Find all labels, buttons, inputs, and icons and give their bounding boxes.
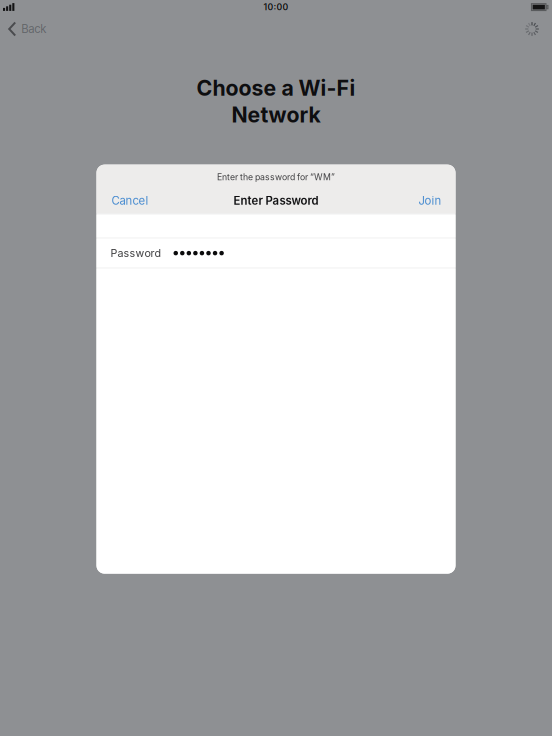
staticText: Join	[418, 194, 441, 207]
staticText: Network	[231, 102, 320, 128]
staticText: 10:00	[263, 2, 288, 12]
button[interactable]: Searching for networks	[522, 19, 542, 39]
staticText: Cancel	[111, 194, 148, 207]
staticText: Choose a Wi-Fi	[196, 75, 355, 101]
staticText: Password	[110, 247, 161, 260]
button[interactable]: Join	[406, 188, 455, 214]
button[interactable]: Password	[96, 239, 455, 268]
staticText: Enter Password	[233, 194, 318, 207]
staticText: Back	[21, 22, 46, 36]
button[interactable]: Back	[0, 18, 54, 40]
staticText: Enter the password for “WM”	[217, 172, 335, 182]
button[interactable]: Cancel	[96, 188, 160, 214]
